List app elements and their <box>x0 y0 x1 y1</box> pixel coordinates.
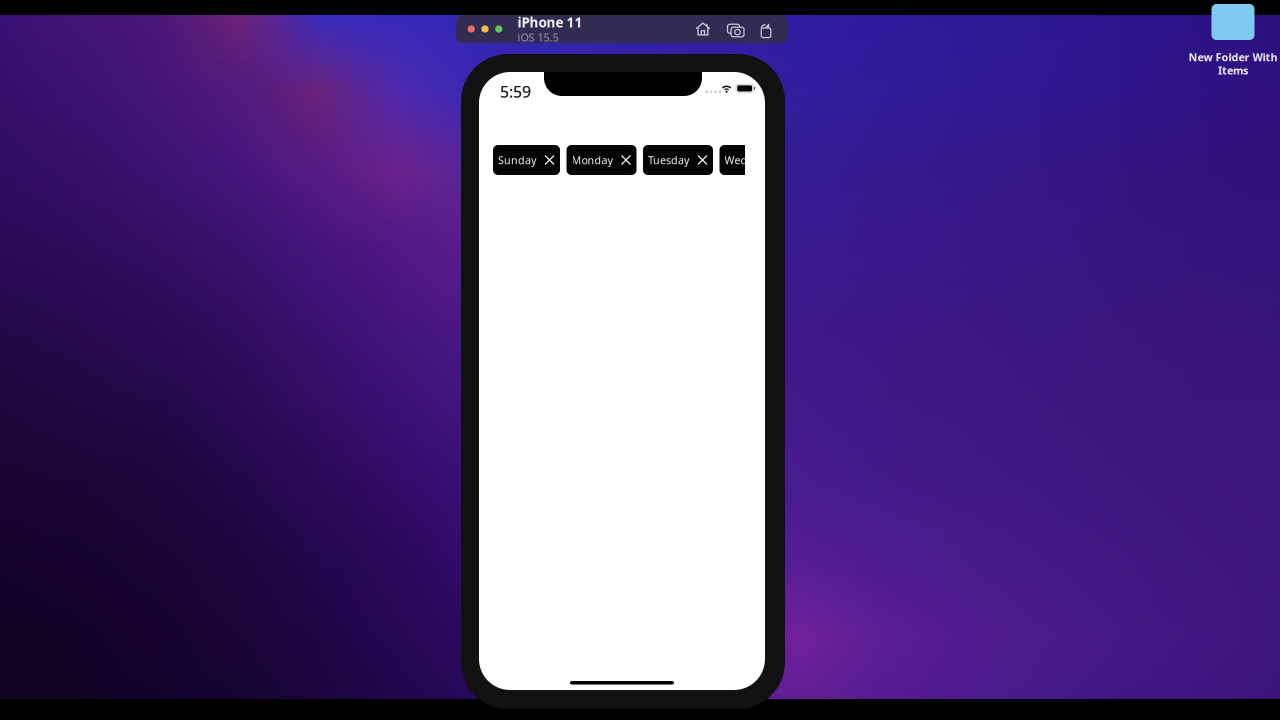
staticText: Tuesday <box>648 153 689 167</box>
button[interactable]: Minimise <box>481 25 489 33</box>
staticText: New Folder With <box>1188 50 1277 64</box>
staticText: iOS 15.5 <box>517 30 558 44</box>
staticText: Wednesday <box>724 153 783 167</box>
button[interactable]: Home <box>688 17 718 41</box>
button[interactable]: Sunday <box>493 145 560 175</box>
staticText: Monday <box>571 153 612 167</box>
staticText: Items <box>1218 63 1248 77</box>
button[interactable]: Wednesday <box>719 145 807 175</box>
button[interactable]: Zoom <box>495 25 502 33</box>
button[interactable]: Monday <box>566 145 636 175</box>
button[interactable]: Screenshot <box>718 17 750 41</box>
button[interactable]: Record screen <box>750 17 778 41</box>
button[interactable]: Close <box>468 25 475 33</box>
button[interactable]: Tuesday <box>643 145 713 175</box>
staticText: 5:59 <box>500 81 531 102</box>
staticText: Sunday <box>498 153 536 167</box>
button[interactable]: New Folder With <box>1183 4 1280 77</box>
staticText: iPhone 11 <box>517 14 582 31</box>
